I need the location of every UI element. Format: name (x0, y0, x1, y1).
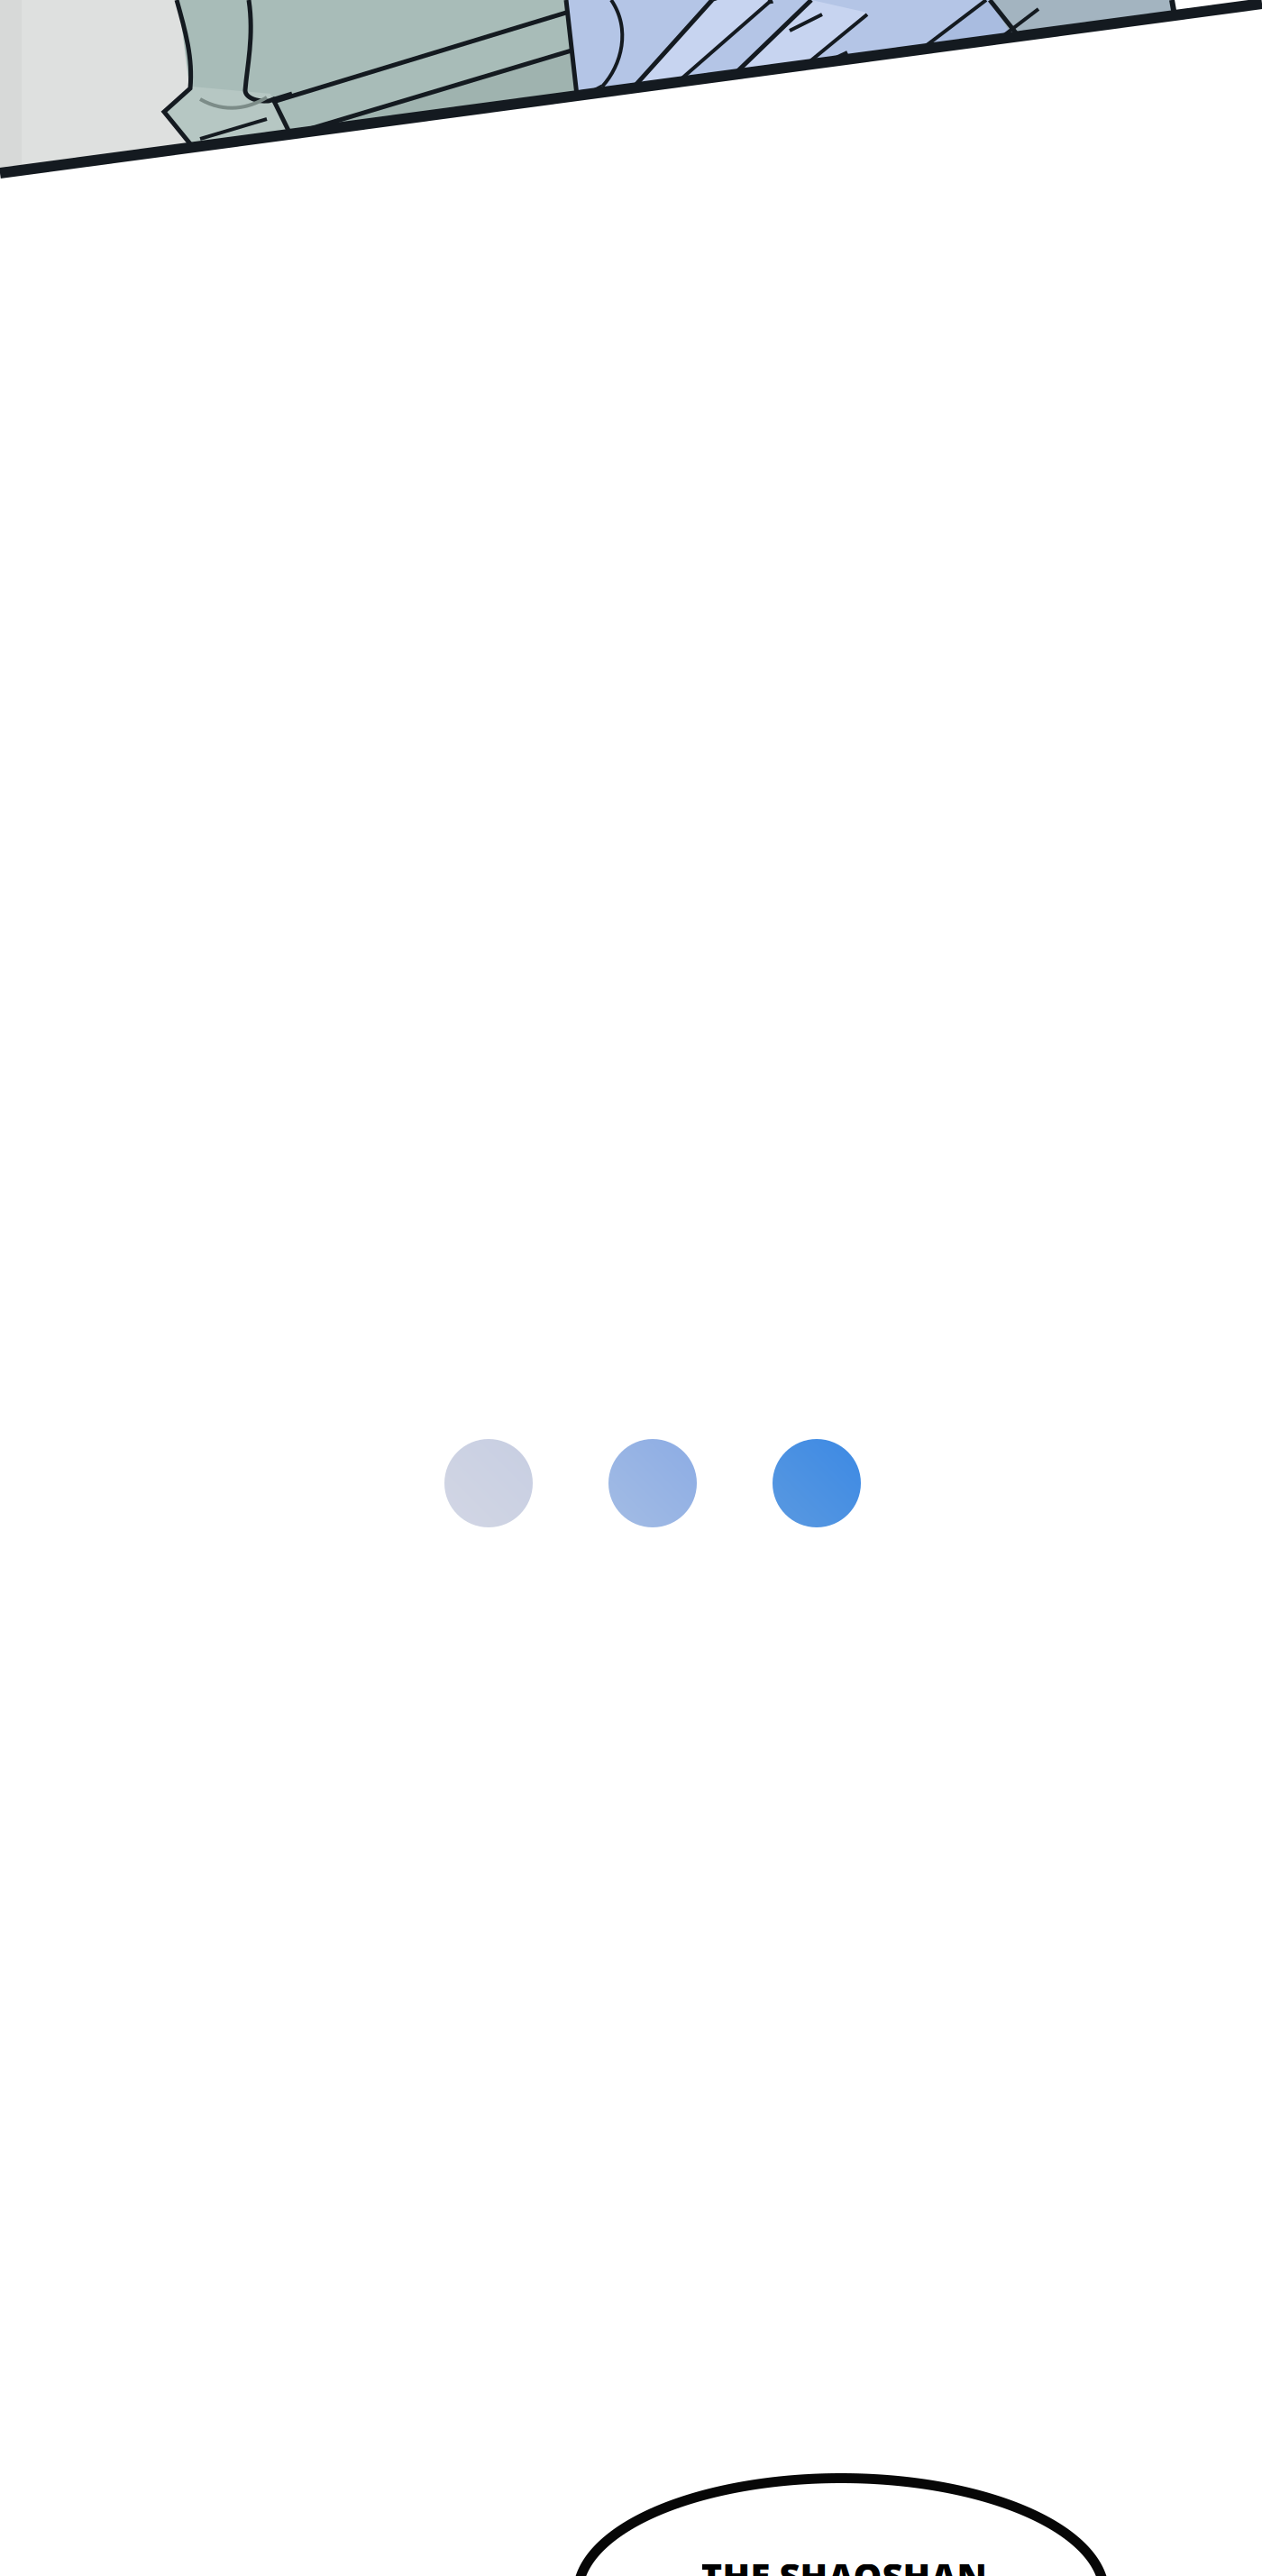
staticText: THE SHAOSHAN (701, 2552, 987, 2576)
button[interactable]: Episode page, tap to show reader control… (0, 0, 1262, 2576)
